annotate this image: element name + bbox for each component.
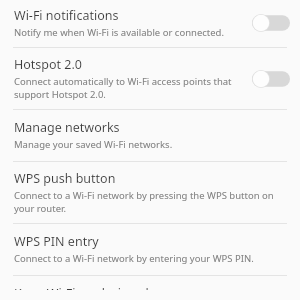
staticText: Connect automatically to Wi-Fi access po…	[14, 75, 244, 101]
staticText: WPS PIN entry	[14, 233, 99, 250]
button[interactable]: Keep Wi-Fi on during sleep	[0, 276, 300, 300]
staticText: Wi-Fi notifications	[14, 7, 119, 24]
staticText: Notify me when Wi-Fi is available or con…	[14, 26, 224, 39]
staticText: Keep Wi-Fi on during sleep	[14, 285, 171, 290]
button[interactable]: WPS PIN entry	[0, 224, 300, 275]
staticText: Connect to a Wi-Fi network by pressing t…	[14, 189, 294, 215]
staticText: Hotspot 2.0	[14, 56, 82, 73]
staticText: WPS push button	[14, 170, 116, 187]
staticText: Manage your saved Wi-Fi networks.	[14, 138, 173, 151]
button[interactable]: Hotspot 2.0	[0, 48, 300, 109]
button[interactable]: WPS push button	[0, 162, 300, 223]
button[interactable]: Manage networks	[0, 110, 300, 161]
staticText: Connect to a Wi-Fi network by entering y…	[14, 252, 254, 265]
button[interactable]: Hotspot 2.0 toggle	[248, 66, 294, 92]
button[interactable]: Wi-Fi notifications toggle	[248, 10, 294, 36]
staticText: Manage networks	[14, 119, 120, 136]
button[interactable]: Wi-Fi notifications	[0, 0, 300, 47]
